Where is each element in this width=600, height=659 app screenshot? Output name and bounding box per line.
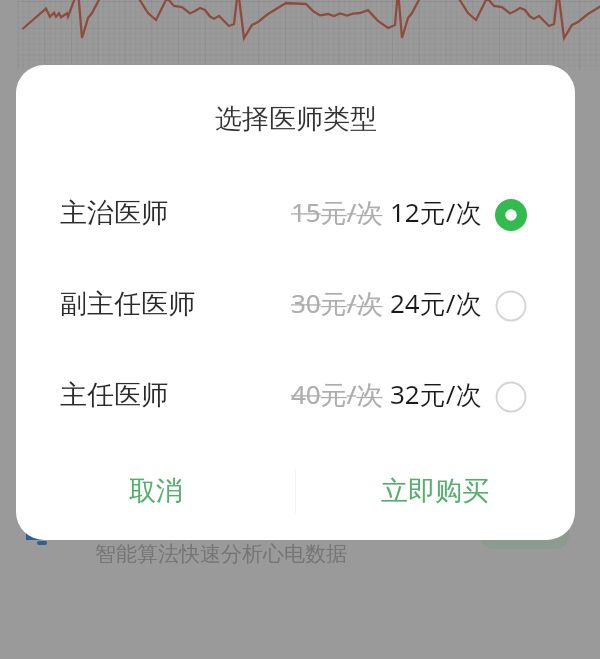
button[interactable]: 立即购买 [295, 442, 575, 540]
staticText: 立即购买 [381, 474, 489, 508]
button[interactable]: 主治医师 [16, 169, 575, 260]
button[interactable]: 副主任医师 [16, 260, 575, 351]
staticText: 主任医师 [60, 378, 168, 412]
staticText: 32元/次 [390, 376, 482, 412]
button[interactable]: 取消 [16, 442, 295, 540]
staticText: 选择医师类型 [215, 102, 377, 136]
staticText: 12元/次 [390, 194, 482, 230]
staticText: 15元/次 [291, 194, 383, 230]
staticText: 24元/次 [390, 285, 482, 321]
button[interactable]: 主任医师 [16, 351, 575, 442]
staticText: 智能算法快速分析心电数据 [95, 541, 347, 567]
staticText: 主治医师 [60, 196, 168, 230]
staticText: 30元/次 [291, 285, 383, 321]
staticText: 40元/次 [291, 376, 383, 412]
staticText: 副主任医师 [60, 287, 195, 321]
staticText: 取消 [129, 474, 183, 508]
